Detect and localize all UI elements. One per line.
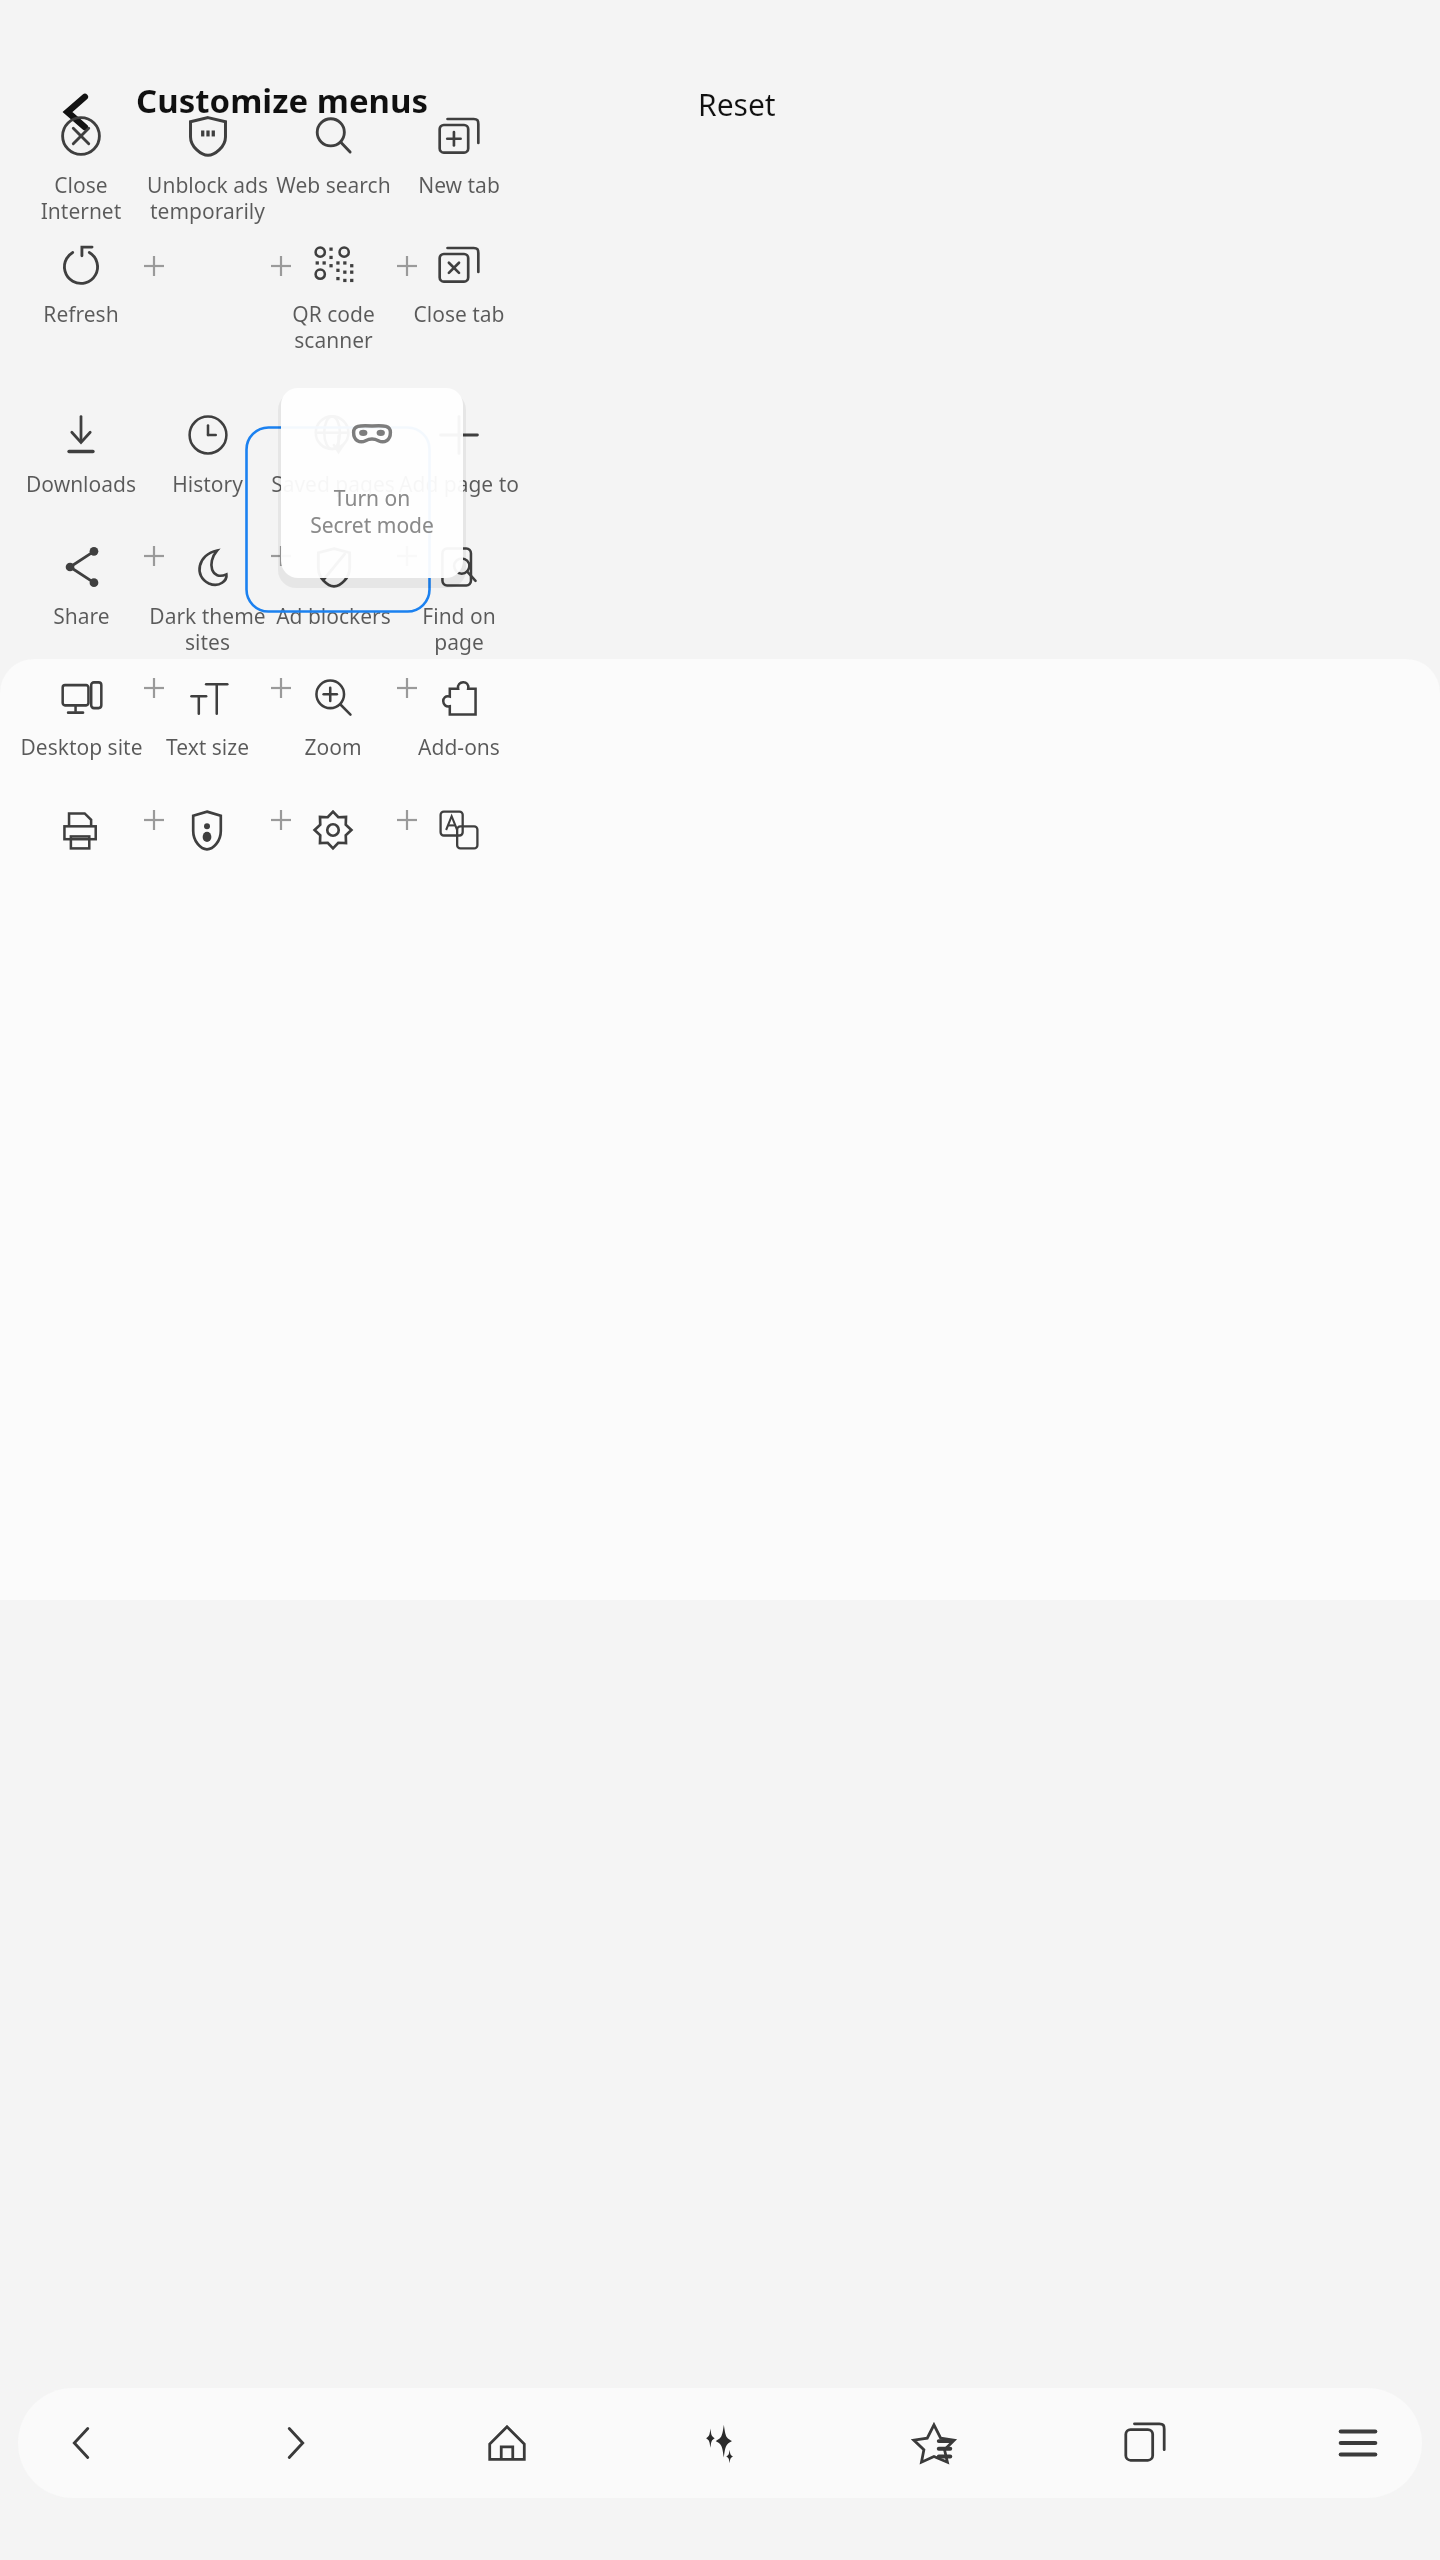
staticText: Unblock ads temporarily bbox=[147, 171, 268, 226]
staticText: Downloads bbox=[26, 470, 136, 499]
staticText: New tab bbox=[418, 171, 500, 200]
staticText: Find on page bbox=[396, 602, 522, 657]
button[interactable] bbox=[18, 807, 144, 927]
button[interactable]: Find on page bbox=[396, 544, 522, 664]
button[interactable]: Assistant bbox=[678, 2391, 762, 2495]
button[interactable]: Refresh bbox=[18, 242, 144, 362]
button[interactable] bbox=[396, 807, 522, 927]
staticText: Close tab bbox=[413, 300, 505, 329]
staticText: QR code scanner bbox=[292, 300, 375, 355]
staticText: Refresh bbox=[43, 300, 119, 329]
staticText: Dark theme sites bbox=[149, 602, 266, 657]
button[interactable]: Dark theme sites bbox=[144, 544, 270, 664]
button[interactable]: Menu bbox=[1316, 2391, 1400, 2495]
button[interactable]: Turn on Secret mode bbox=[281, 388, 463, 578]
button[interactable]: Close tab bbox=[396, 242, 522, 362]
button[interactable]: Unblock ads temporarily bbox=[144, 113, 270, 233]
button[interactable]: Home bbox=[465, 2391, 549, 2495]
staticText: Turn on Secret mode bbox=[310, 484, 434, 539]
staticText: Customize menus bbox=[136, 78, 429, 123]
button[interactable]: History bbox=[144, 412, 270, 532]
button[interactable]: Zoom bbox=[270, 675, 396, 795]
button[interactable]: QR code scanner bbox=[270, 242, 396, 362]
button[interactable]: Add-ons bbox=[396, 675, 522, 795]
staticText: Zoom bbox=[304, 733, 362, 762]
button[interactable]: Saved pages bbox=[270, 412, 396, 532]
staticText: Close Internet bbox=[18, 171, 144, 226]
staticText: Reset bbox=[698, 84, 776, 125]
staticText: Add-ons bbox=[418, 733, 500, 762]
button[interactable] bbox=[270, 807, 396, 927]
button[interactable]: Close Internet bbox=[18, 113, 144, 233]
button[interactable]: Downloads bbox=[18, 412, 144, 532]
button[interactable]: Tabs bbox=[1103, 2391, 1187, 2495]
staticText: History bbox=[172, 470, 243, 499]
button[interactable]: Back bbox=[49, 84, 105, 140]
button[interactable]: Forward bbox=[253, 2391, 337, 2495]
staticText: Ad blockers bbox=[276, 602, 391, 631]
button[interactable]: Web search bbox=[270, 113, 396, 233]
button[interactable]: Desktop site bbox=[18, 675, 144, 795]
button[interactable] bbox=[144, 807, 270, 927]
staticText: Saved pages bbox=[271, 470, 395, 499]
staticText: Text size bbox=[166, 733, 249, 762]
staticText: Web search bbox=[276, 171, 391, 200]
staticText: Add page to bbox=[399, 470, 519, 499]
button[interactable]: Reset bbox=[690, 78, 784, 131]
button[interactable]: New tab bbox=[396, 113, 522, 233]
button[interactable]: Ad blockers bbox=[270, 544, 396, 664]
staticText: Share bbox=[53, 602, 110, 631]
button[interactable]: Back bbox=[40, 2391, 124, 2495]
button[interactable]: Bookmarks bbox=[891, 2391, 975, 2495]
button[interactable]: Add page to bbox=[396, 412, 522, 532]
button[interactable]: Text size bbox=[144, 675, 270, 795]
staticText: Desktop site bbox=[20, 733, 143, 762]
button[interactable]: Share bbox=[18, 544, 144, 664]
